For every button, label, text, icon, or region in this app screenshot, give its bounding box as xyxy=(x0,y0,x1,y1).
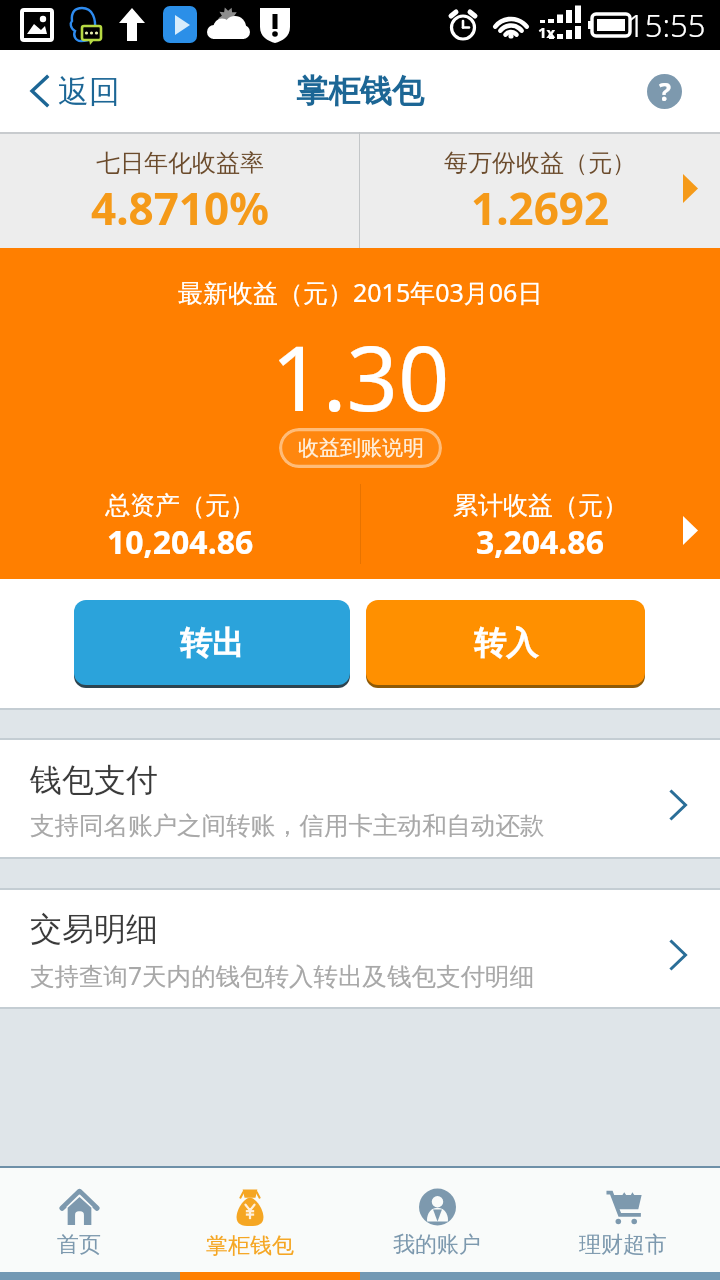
staticText: 支持同名账户之间转账，信用卡主动和自动还款 xyxy=(30,810,545,841)
staticText: 1x xyxy=(538,22,556,42)
staticText: 每万份收益（元） xyxy=(444,148,636,178)
staticText: 掌柜钱包 xyxy=(296,71,424,111)
staticText: 1.2692 xyxy=(471,178,610,238)
button[interactable]: 转入 xyxy=(366,600,645,685)
button[interactable]: 理财超市 xyxy=(533,1168,713,1272)
staticText: 3,204.86 xyxy=(476,520,604,564)
staticText: 转出 xyxy=(180,623,244,663)
button[interactable]: 我的账户 xyxy=(347,1168,527,1272)
staticText: 累计收益（元） xyxy=(453,490,628,521)
staticText: 我的账户 xyxy=(393,1231,481,1259)
staticText: 收益到账说明 xyxy=(298,435,424,461)
staticText: ? xyxy=(659,74,671,108)
staticText: 返回 xyxy=(58,72,120,111)
button[interactable]: 首页 xyxy=(0,1168,169,1272)
staticText: 交易明细 xyxy=(30,909,158,949)
button[interactable]: 钱包支付 xyxy=(0,740,720,857)
staticText: 钱包支付 xyxy=(30,760,158,800)
button[interactable]: 交易明细 xyxy=(0,890,720,1007)
staticText: 七日年化收益率 xyxy=(96,148,264,178)
staticText: 总资产（元） xyxy=(105,490,255,521)
staticText: 支持查询7天内的钱包转入转出及钱包支付明细 xyxy=(30,959,535,992)
button[interactable]: 掌柜钱包 xyxy=(160,1168,340,1272)
staticText: 15:55 xyxy=(627,4,706,46)
staticText: 1.30 xyxy=(271,315,450,438)
staticText: 10,204.86 xyxy=(107,520,254,564)
button[interactable]: 转出 xyxy=(74,600,350,685)
button[interactable]: 收益到账说明 xyxy=(279,428,442,468)
staticText: 首页 xyxy=(57,1231,101,1259)
staticText: 理财超市 xyxy=(579,1231,667,1259)
button[interactable]: 返回 xyxy=(0,50,136,132)
staticText: 转入 xyxy=(474,623,538,663)
staticText: 掌柜钱包 xyxy=(206,1232,294,1260)
staticText: 最新收益（元）2015年03月06日 xyxy=(178,275,543,309)
staticText: 4.8710% xyxy=(91,178,269,238)
button[interactable]: Help xyxy=(647,74,682,109)
button[interactable]: 七日年化收益率 xyxy=(0,132,720,248)
